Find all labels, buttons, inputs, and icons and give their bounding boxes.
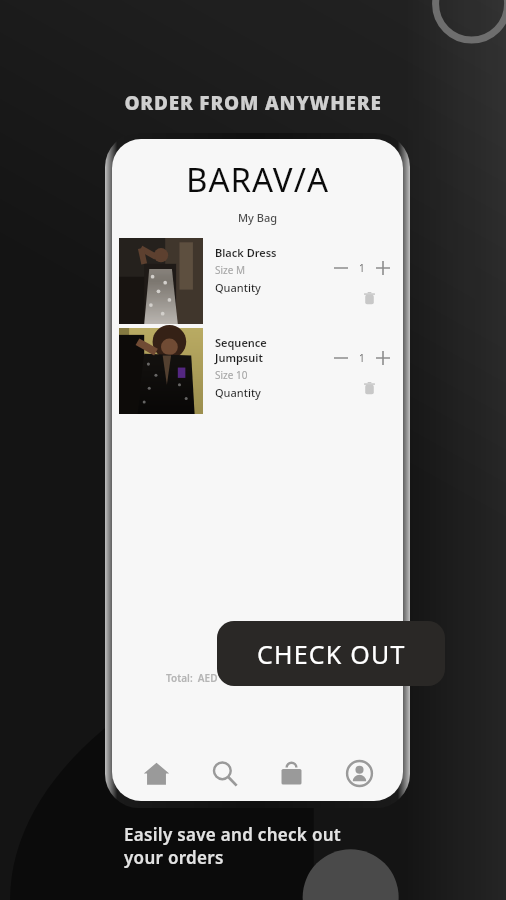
staticText: Sequence Jumpsuit — [215, 335, 317, 365]
button[interactable]: Profile — [336, 750, 382, 796]
staticText: Black Dress — [215, 245, 277, 260]
staticText: your orders — [124, 846, 224, 869]
staticText: 1 — [359, 261, 365, 275]
button[interactable]: Home — [133, 750, 179, 796]
staticText: Size 10 — [215, 368, 248, 382]
button[interactable]: Sequence Jumpsuit — [112, 326, 403, 416]
button[interactable]: Delete item — [359, 378, 379, 398]
staticText: Easily save and check out — [124, 823, 342, 846]
staticText: BARAV/A — [112, 157, 403, 202]
button[interactable]: Search — [201, 750, 247, 796]
button[interactable]: Increase quantity — [373, 258, 393, 278]
button[interactable]: Delete item — [359, 288, 379, 308]
button[interactable]: Black Dress — [112, 236, 403, 326]
staticText: ORDER FROM ANYWHERE — [124, 90, 382, 116]
staticText: Quantity — [215, 280, 261, 295]
button[interactable]: CHECK OUT — [217, 621, 445, 686]
staticText: My Bag — [112, 210, 403, 225]
staticText: CHECK OUT — [257, 637, 406, 671]
staticText: Size M — [215, 263, 246, 277]
button[interactable]: Bag — [268, 750, 314, 796]
staticText: Total: AED — [166, 671, 218, 685]
staticText: 1 — [359, 351, 365, 365]
button[interactable]: Decrease quantity — [331, 258, 351, 278]
button[interactable]: Increase quantity — [373, 348, 393, 368]
staticText: Quantity — [215, 385, 261, 400]
button[interactable]: Decrease quantity — [331, 348, 351, 368]
